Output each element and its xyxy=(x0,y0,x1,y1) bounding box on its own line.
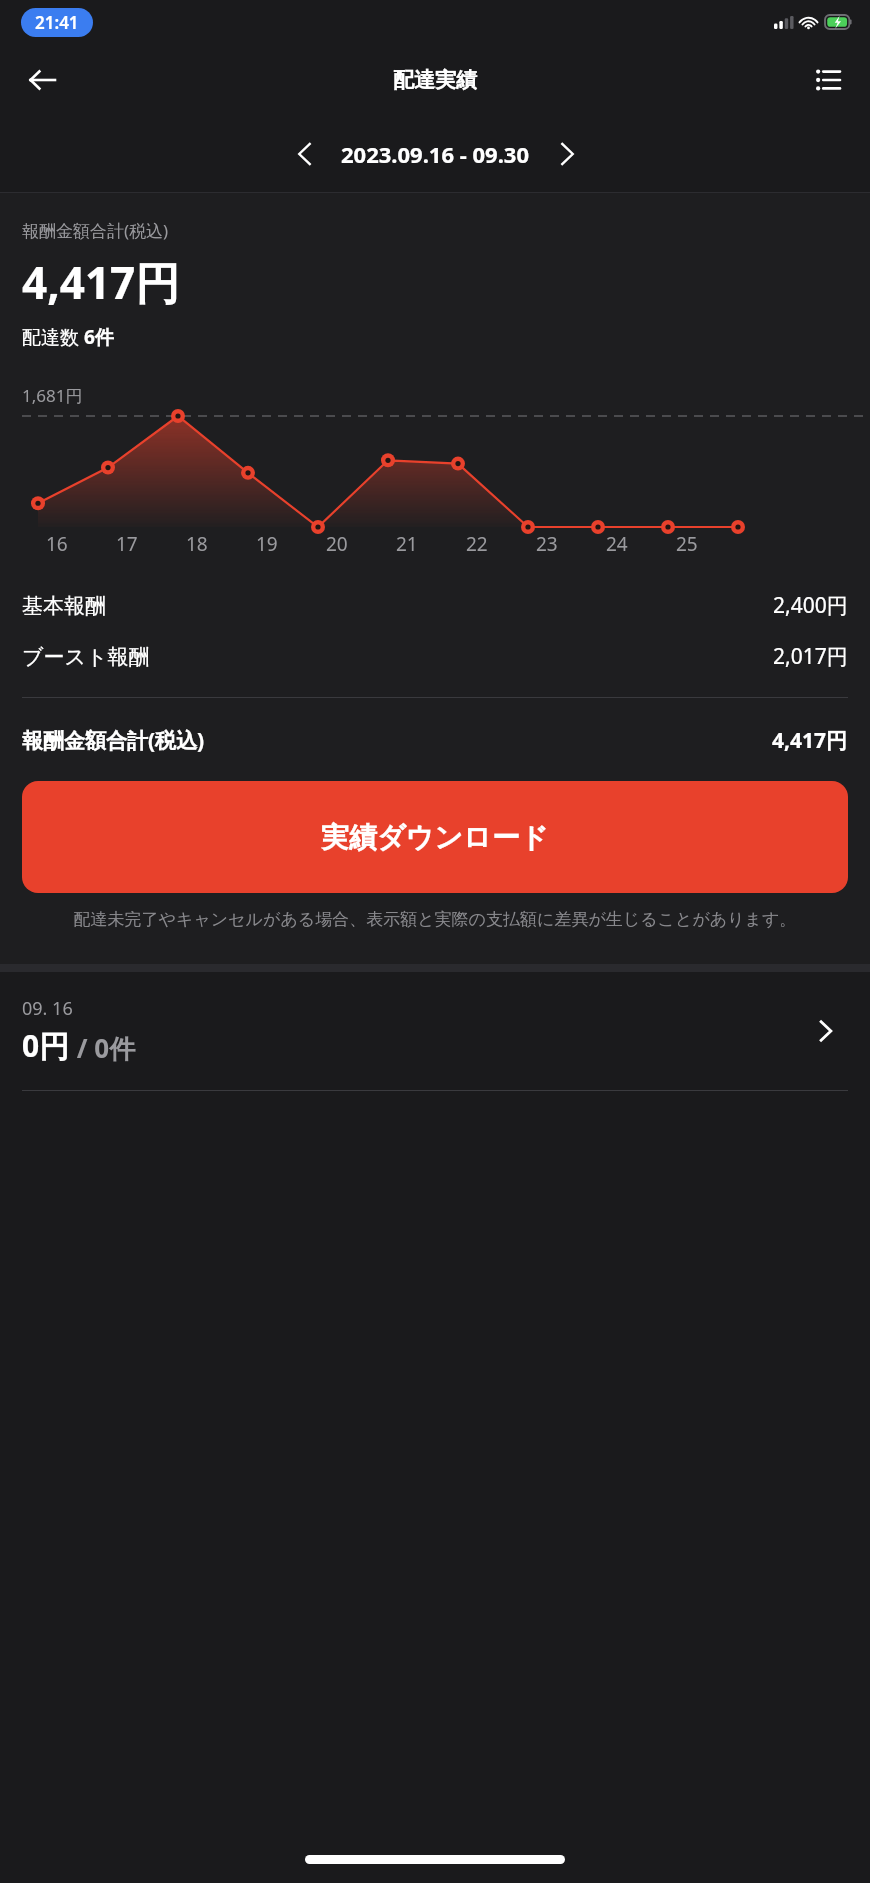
staticText: 基本報酬 xyxy=(22,593,106,619)
button[interactable]: 実績ダウンロード xyxy=(22,781,848,893)
staticText: 2,017円 xyxy=(773,642,848,671)
staticText: 報酬金額合計(税込) xyxy=(22,726,205,755)
button[interactable]: Next period xyxy=(544,131,590,177)
staticText: 21:41 xyxy=(35,11,79,34)
other: Open day detail xyxy=(804,1009,848,1053)
button[interactable]: List xyxy=(800,52,856,108)
staticText: 17 xyxy=(116,531,138,557)
staticText: 実績ダウンロード xyxy=(321,820,549,855)
staticText: 2,400円 xyxy=(773,591,848,620)
staticText: 配達実績 xyxy=(393,67,477,93)
staticText: 4,417円 xyxy=(22,252,180,312)
staticText: 23 xyxy=(536,531,558,557)
staticText: 09. 16 xyxy=(22,996,73,1021)
staticText: 24 xyxy=(606,531,628,557)
staticText: 1,681円 xyxy=(22,384,83,407)
button[interactable]: Previous period xyxy=(281,131,327,177)
staticText: / 0件 xyxy=(70,1030,136,1066)
button[interactable]: Back xyxy=(14,52,70,108)
staticText: 0円 xyxy=(22,1025,70,1066)
staticText: 20 xyxy=(326,531,348,557)
staticText: 21 xyxy=(396,531,418,557)
staticText: 報酬金額合計(税込) xyxy=(22,219,169,242)
staticText: 6件 xyxy=(84,324,114,350)
staticText: 16 xyxy=(46,531,68,557)
staticText: 25 xyxy=(676,531,698,557)
staticText: 配達数 xyxy=(22,324,84,350)
staticText: 18 xyxy=(186,531,208,557)
staticText: ブースト報酬 xyxy=(22,644,150,670)
staticText: 22 xyxy=(466,531,488,557)
staticText: 配達未完了やキャンセルがある場合、表示額と実際の支払額に差異が生じることがありま… xyxy=(22,909,848,930)
button[interactable]: 09. 16 xyxy=(0,972,870,1090)
staticText: 19 xyxy=(256,531,278,557)
staticText: 4,417円 xyxy=(772,726,848,755)
staticText: 2023.09.16 - 09.30 xyxy=(341,139,530,169)
